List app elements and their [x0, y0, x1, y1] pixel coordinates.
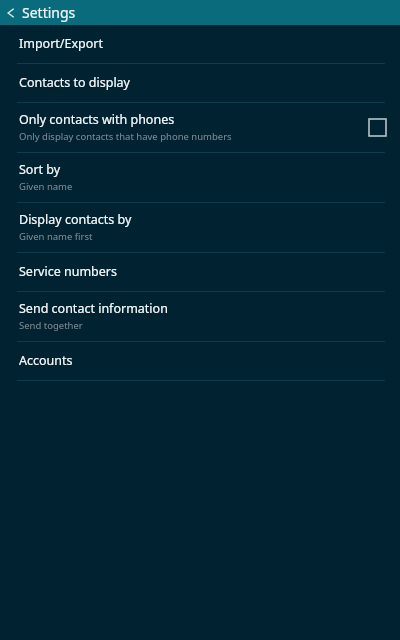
- staticText: Only display contacts that have phone nu…: [19, 130, 232, 143]
- staticText: Given name first: [19, 230, 93, 243]
- staticText: Send contact information: [19, 300, 168, 317]
- button[interactable]: Contacts to display: [0, 64, 400, 102]
- staticText: Given name: [19, 180, 73, 193]
- other: Only contacts with phones checkbox: [369, 119, 386, 136]
- button[interactable]: Back: [0, 0, 22, 25]
- staticText: Display contacts by: [19, 211, 132, 228]
- button[interactable]: Display contacts by: [0, 203, 400, 252]
- staticText: Contacts to display: [19, 74, 130, 91]
- button[interactable]: Accounts: [0, 342, 400, 380]
- staticText: Accounts: [19, 352, 73, 369]
- button[interactable]: Send contact information: [0, 292, 400, 341]
- button[interactable]: Only contacts with phones: [0, 103, 400, 152]
- staticText: Import/Export: [19, 35, 103, 52]
- staticText: Settings: [22, 3, 76, 22]
- staticText: Sort by: [19, 161, 61, 178]
- staticText: Service numbers: [19, 263, 117, 280]
- button[interactable]: Import/Export: [0, 25, 400, 63]
- button[interactable]: Sort by: [0, 153, 400, 202]
- staticText: Send together: [19, 319, 83, 332]
- staticText: Only contacts with phones: [19, 111, 175, 128]
- button[interactable]: Service numbers: [0, 253, 400, 291]
